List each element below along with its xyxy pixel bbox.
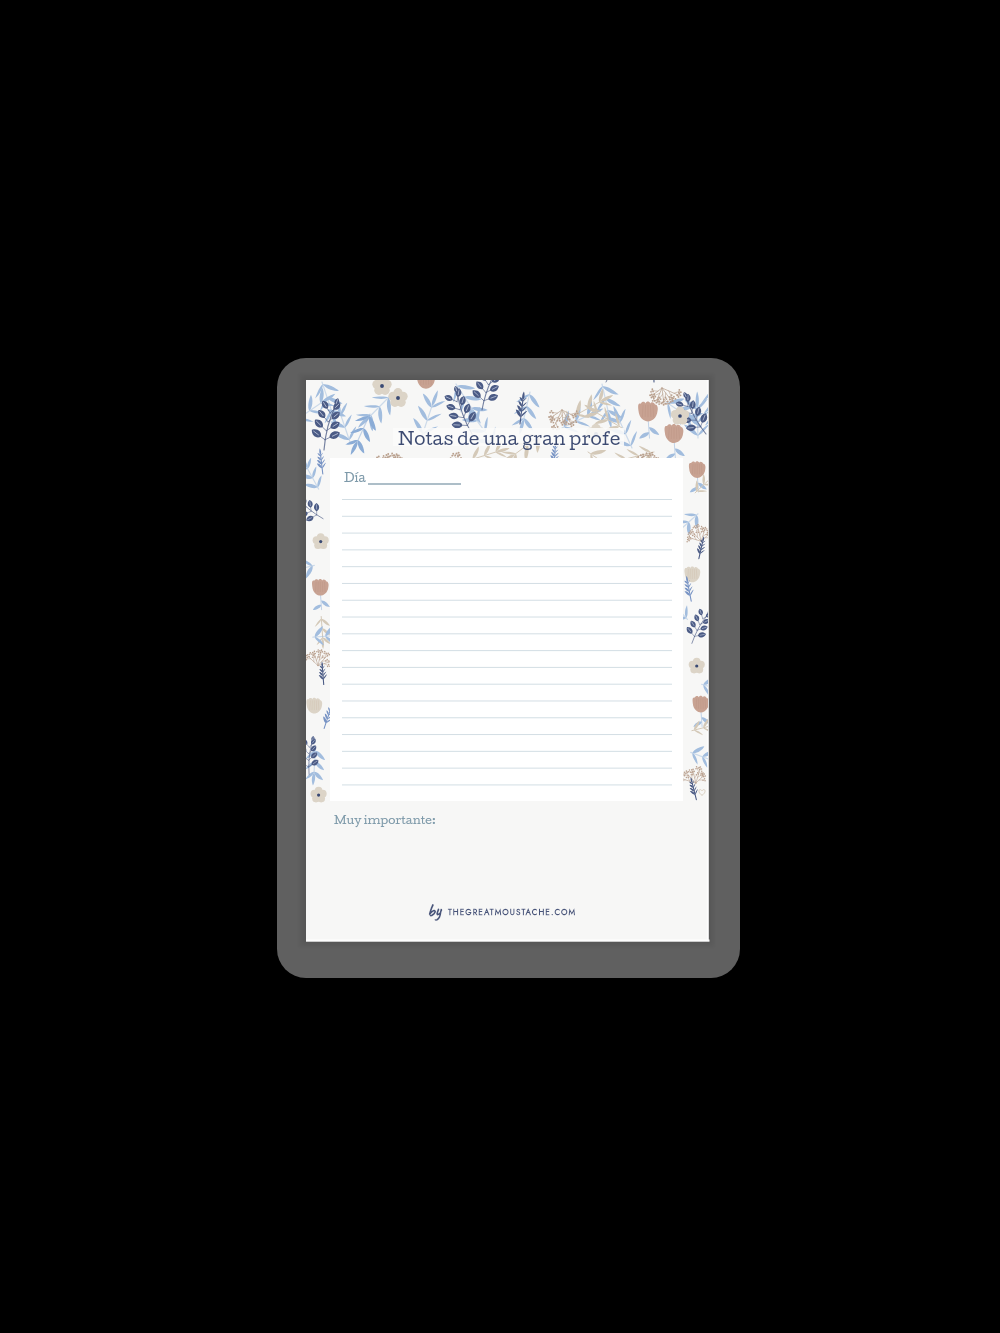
staticText: Notas de una gran profe bbox=[398, 427, 621, 448]
button[interactable]: by thegreatmoustache.com bbox=[425, 898, 577, 922]
button[interactable] bbox=[277, 358, 740, 978]
button[interactable]: Muy importante bbox=[332, 809, 442, 831]
button[interactable]: Notas de una gran profe bbox=[393, 428, 624, 446]
staticText: THEGREATMOUSTACHE.COM bbox=[448, 906, 577, 918]
staticText: Muy importante: bbox=[334, 813, 436, 827]
staticText: Día bbox=[344, 470, 366, 484]
staticText: by bbox=[427, 899, 441, 922]
button[interactable]: Día bbox=[342, 466, 464, 488]
